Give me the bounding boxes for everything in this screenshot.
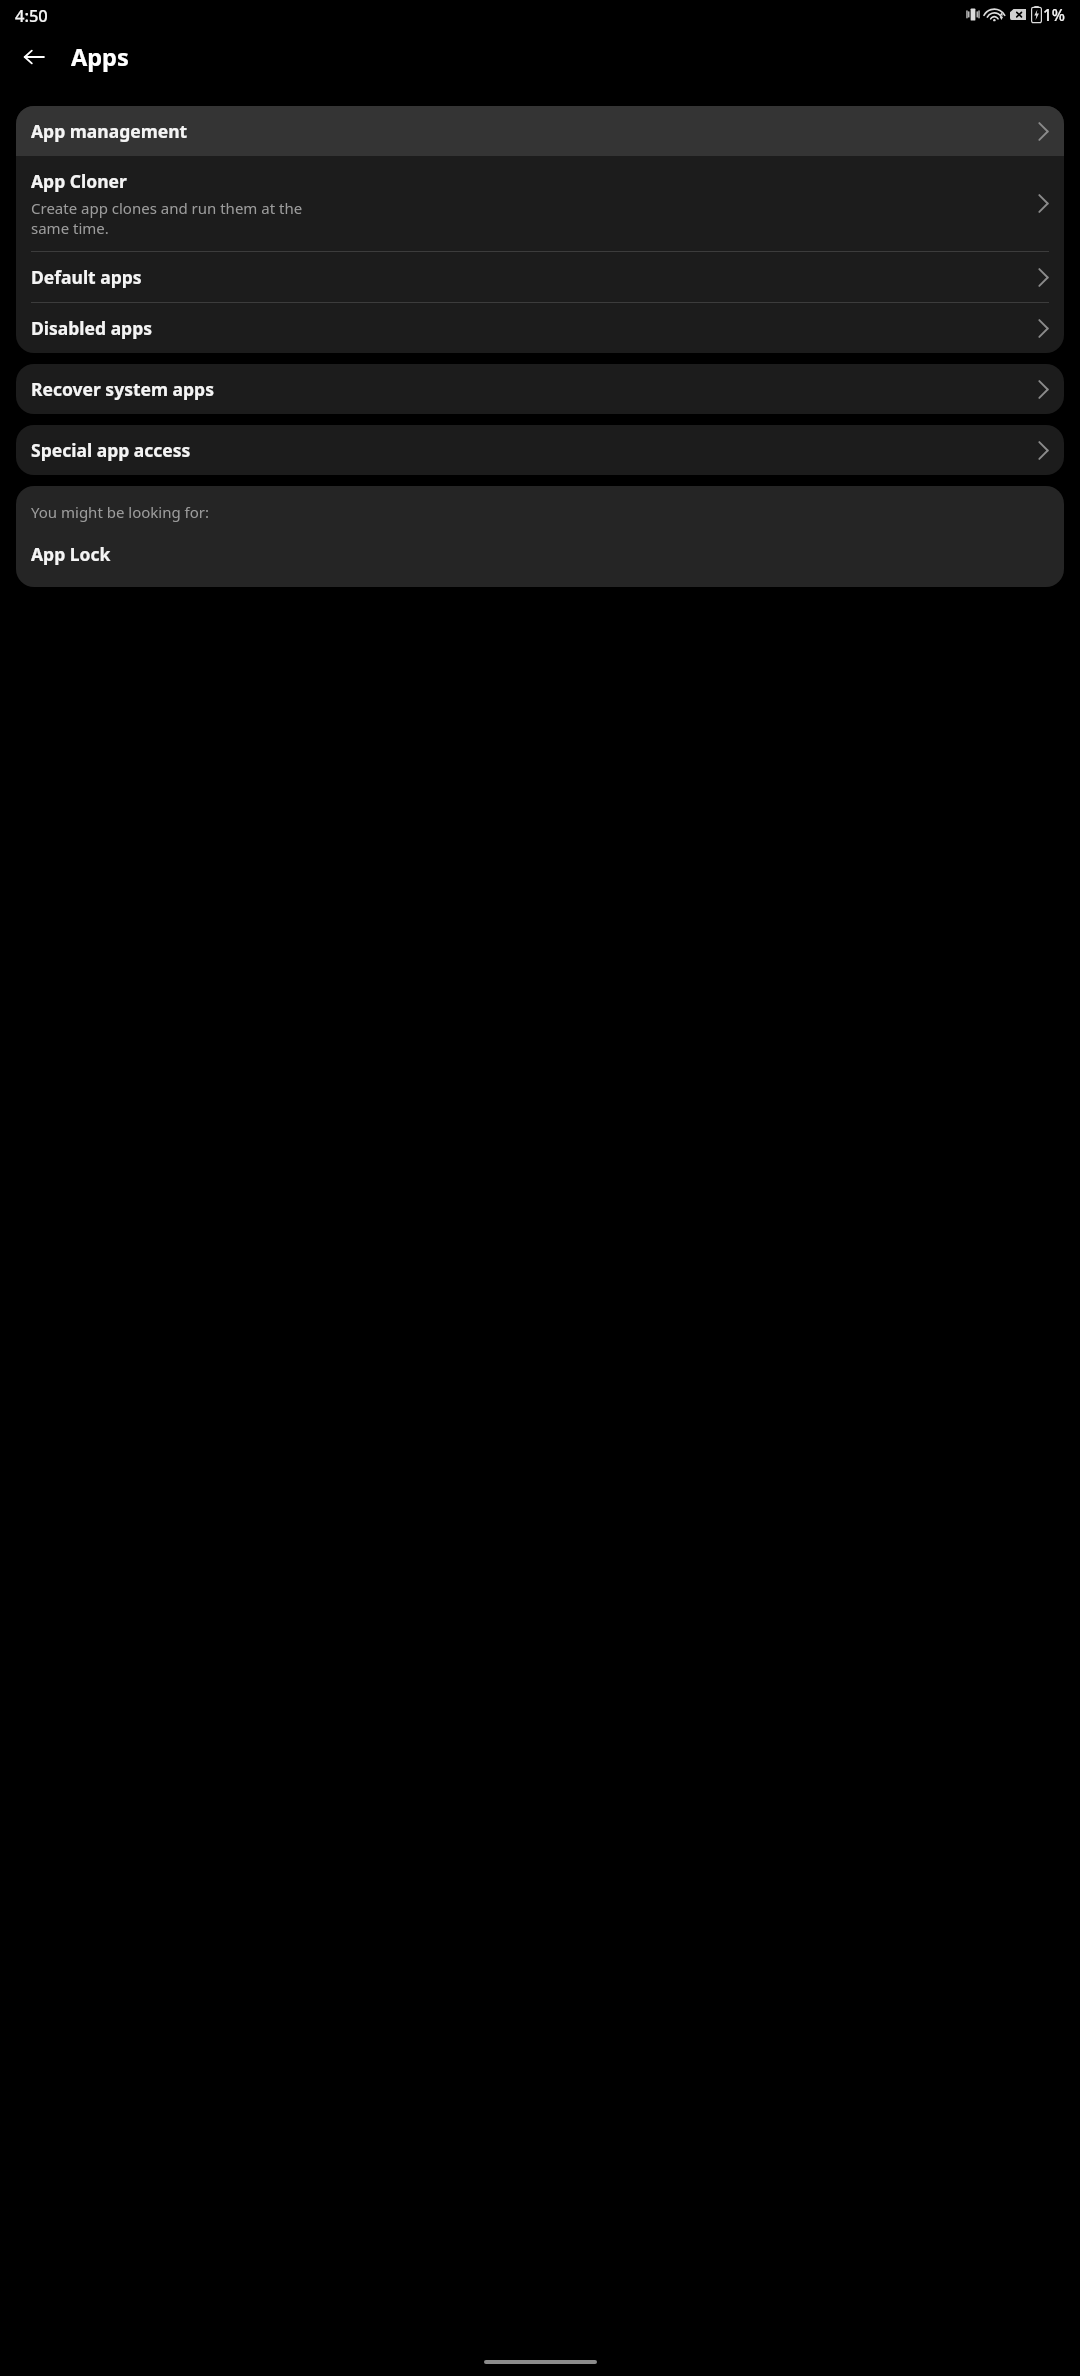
staticText: Special app access bbox=[31, 438, 191, 462]
staticText: 4:50 bbox=[15, 4, 48, 26]
button[interactable]: Back bbox=[10, 33, 58, 81]
staticText: App management bbox=[31, 119, 188, 143]
button[interactable]: Disabled apps bbox=[16, 303, 1064, 353]
staticText: 1% bbox=[1043, 4, 1066, 25]
staticText: You might be looking for: bbox=[31, 502, 210, 522]
staticText: Default apps bbox=[31, 265, 142, 289]
staticText: Disabled apps bbox=[31, 316, 153, 340]
button[interactable]: Special app access bbox=[16, 425, 1064, 475]
staticText: App Cloner bbox=[31, 169, 127, 193]
button[interactable]: Default apps bbox=[16, 252, 1064, 302]
staticText: Recover system apps bbox=[31, 377, 214, 401]
button[interactable]: App management bbox=[16, 106, 1064, 156]
staticText: Create app clones and run them at the sa… bbox=[31, 198, 303, 238]
staticText: App Lock bbox=[31, 542, 111, 566]
button[interactable]: App Lock bbox=[31, 538, 1049, 570]
button[interactable]: Recover system apps bbox=[16, 364, 1064, 414]
staticText: Apps bbox=[71, 41, 129, 73]
button[interactable]: App Cloner bbox=[16, 156, 1064, 251]
